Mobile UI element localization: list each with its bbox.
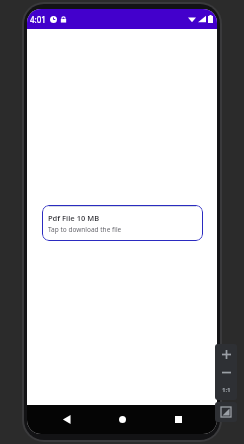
staticText: 1:1 [222, 386, 231, 394]
staticText: 4:01 [30, 14, 46, 25]
staticText: www. [67, 5, 93, 17]
button[interactable]: Zoom in [218, 346, 234, 362]
staticText: BANDICAM [93, 3, 155, 18]
button[interactable]: Back [49, 405, 83, 434]
button[interactable]: Recent apps [161, 405, 195, 434]
button[interactable]: Zoom out [218, 364, 234, 380]
button[interactable]: Fullscreen [215, 402, 237, 422]
button[interactable]: Pdf File 10 MB [42, 205, 203, 241]
staticText: Pdf File 10 MB [48, 213, 100, 223]
staticText: Tap to download the file [48, 225, 122, 234]
button[interactable]: Home [105, 405, 139, 434]
staticText: .com [155, 5, 177, 17]
button[interactable]: Actual size [218, 382, 234, 398]
